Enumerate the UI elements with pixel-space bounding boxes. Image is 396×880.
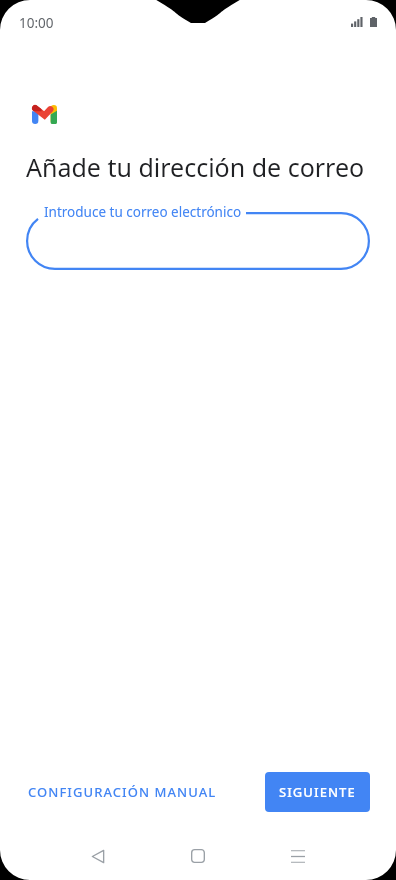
button[interactable]: Back xyxy=(66,832,130,880)
button[interactable]: Recent apps xyxy=(266,832,330,880)
button[interactable]: Introduce tu correo electrónico xyxy=(26,212,370,270)
button[interactable]: SIGUIENTE xyxy=(265,772,370,812)
staticText: 10:00 xyxy=(19,14,54,32)
staticText: Introduce tu correo electrónico xyxy=(44,203,242,221)
button[interactable]: CONFIGURACIÓN MANUAL xyxy=(18,774,227,810)
staticText: SIGUIENTE xyxy=(279,783,356,801)
staticText: CONFIGURACIÓN MANUAL xyxy=(28,783,217,801)
button[interactable]: Home xyxy=(166,832,230,880)
staticText: Añade tu dirección de correo xyxy=(26,150,365,184)
